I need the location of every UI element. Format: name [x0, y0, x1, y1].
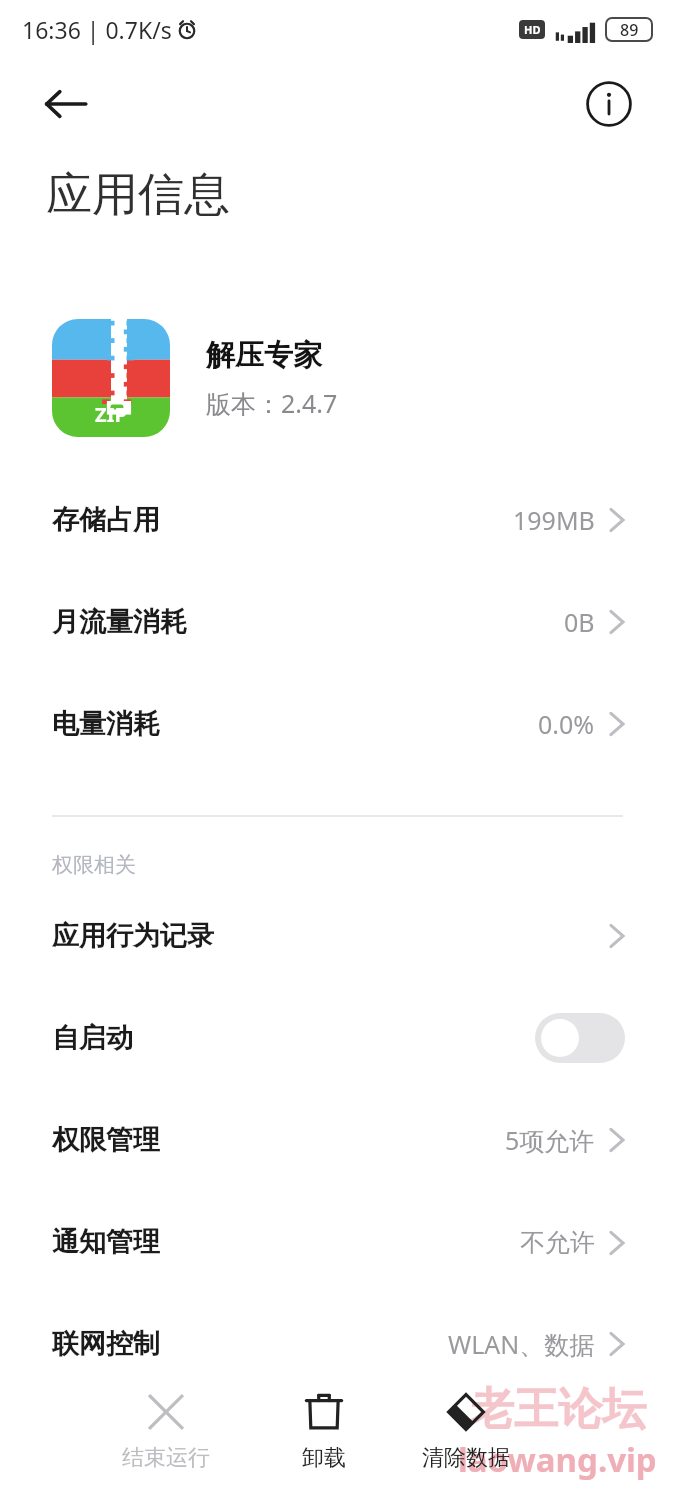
staticText: 版本：2.4.7 — [206, 386, 338, 420]
button[interactable]: 权限管理 — [0, 1104, 675, 1176]
staticText: 通知管理 — [52, 1225, 160, 1259]
button[interactable]: 联网控制 — [0, 1308, 675, 1380]
staticText: 0.0% — [538, 707, 595, 741]
staticText: 不允许 — [520, 1227, 595, 1258]
button[interactable]: 通知管理 — [0, 1206, 675, 1278]
staticText: 5项允许 — [505, 1123, 595, 1157]
button[interactable]: 清除数据 — [416, 1386, 515, 1476]
staticText: 89 — [620, 19, 639, 41]
button[interactable]: 卸载 — [258, 1386, 390, 1476]
staticText: 权限相关 — [52, 852, 136, 878]
staticText: 联网控制 — [52, 1327, 160, 1361]
button[interactable]: 应用行为记录 — [0, 900, 675, 972]
staticText: ZIP — [95, 401, 127, 428]
button[interactable]: 存储占用 — [0, 484, 675, 556]
staticText: 权限管理 — [52, 1123, 160, 1157]
button[interactable]: App details — [573, 68, 645, 140]
staticText: 卸载 — [302, 1444, 346, 1472]
staticText: 月流量消耗 — [52, 605, 187, 639]
button[interactable]: 结束运行 — [100, 1386, 232, 1476]
staticText: 0B — [564, 605, 595, 639]
button[interactable]: 月流量消耗 — [0, 586, 675, 658]
button[interactable]: 自启动 toggle, off — [535, 1013, 625, 1063]
button[interactable]: Back — [30, 68, 102, 140]
staticText: HD — [524, 22, 541, 37]
staticText: 结束运行 — [122, 1444, 210, 1472]
staticText: 解压专家 — [206, 337, 322, 374]
staticText: WLAN、数据 — [448, 1327, 595, 1361]
staticText: 电量消耗 — [52, 707, 160, 741]
staticText: 自启动 — [52, 1021, 133, 1055]
button[interactable]: 电量消耗 — [0, 688, 675, 760]
staticText: 16:36 | 0.7K/s — [22, 14, 172, 45]
staticText: 应用信息 — [46, 166, 230, 224]
staticText: laowang.vip — [458, 1437, 657, 1482]
staticText: 存储占用 — [52, 503, 160, 537]
button[interactable]: 自启动 — [0, 1002, 675, 1074]
staticText: 老王论坛 — [470, 1382, 646, 1437]
staticText: 清除数据 — [422, 1444, 510, 1472]
staticText: 199MB — [513, 503, 595, 537]
staticText: 应用行为记录 — [52, 919, 214, 953]
